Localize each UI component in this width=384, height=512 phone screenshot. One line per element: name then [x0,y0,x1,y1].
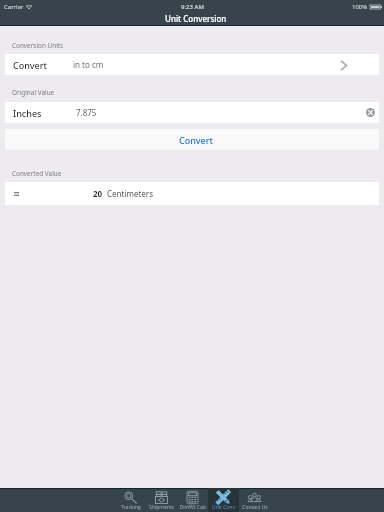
staticText: Centimeters [107,188,153,199]
staticText: 20 [93,188,103,199]
staticText: Inches [13,107,42,119]
button[interactable]: Convert [5,129,379,150]
button[interactable]: Clear text [366,108,375,117]
staticText: 100% [352,3,368,11]
button[interactable]: Contact Us [239,488,270,512]
staticText: in to cm [73,59,104,70]
staticText: Conversion Units [12,41,64,50]
staticText: Converted Value [12,169,62,178]
button[interactable]: Shipments [146,488,177,512]
staticText: Original Value [12,88,55,97]
button[interactable]: Convert [5,54,379,75]
staticText: Unit Conversion [165,13,227,24]
staticText: Convert [179,134,214,146]
staticText: Shipments [149,504,174,511]
staticText: DimWt Calc [179,504,207,511]
staticText: Convert [13,59,48,71]
button[interactable]: Unit Conv [208,488,239,512]
button[interactable]: DimWt Calc [177,488,208,512]
staticText: Contact Us [242,504,268,511]
staticText: Tracking [121,504,141,511]
other: Wifi [26,4,32,10]
staticText: Unit Conv [212,504,235,511]
button[interactable]: Tracking [115,488,146,512]
staticText: 9:23 AM [181,3,204,11]
staticText: Carrier [4,3,24,11]
staticText: 7.875 [76,107,97,118]
